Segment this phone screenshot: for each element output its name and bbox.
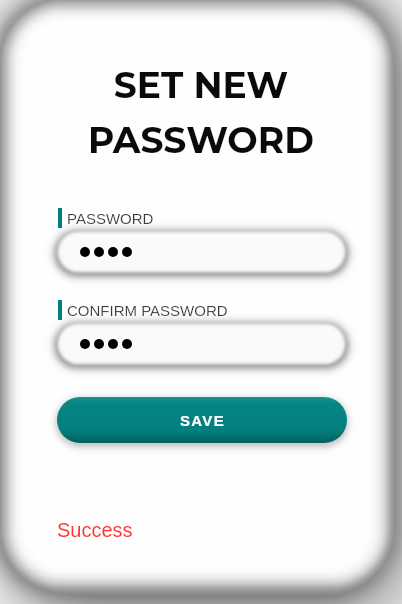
- button[interactable]: Password input field: [57, 231, 346, 273]
- button[interactable]: Password input field: [57, 323, 346, 365]
- staticText: Success: [57, 519, 133, 541]
- staticText: CONFIRM PASSWORD: [67, 302, 228, 319]
- button[interactable]: SAVE: [57, 397, 347, 443]
- staticText: PASSWORD: [67, 210, 154, 227]
- staticText: SAVE: [180, 412, 225, 429]
- staticText: SET NEW PASSWORD: [0, 63, 402, 162]
